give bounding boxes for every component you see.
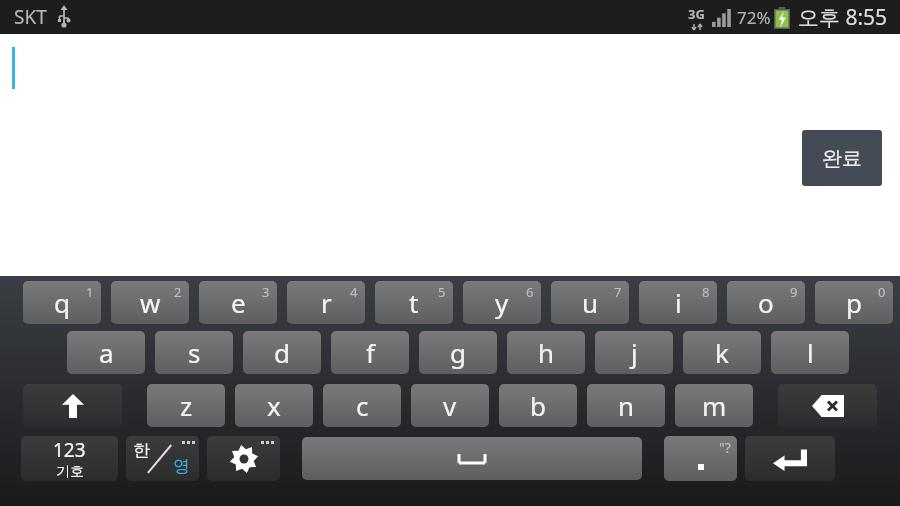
staticText: 72% bbox=[737, 6, 771, 29]
button[interactable]: Language bbox=[126, 436, 199, 481]
button[interactable]: g bbox=[419, 331, 497, 374]
staticText: 5 bbox=[438, 283, 446, 301]
staticText: 영 bbox=[173, 456, 190, 477]
staticText: n bbox=[618, 388, 635, 423]
staticText: k bbox=[715, 335, 729, 370]
staticText: i bbox=[675, 285, 682, 320]
staticText: y bbox=[495, 285, 509, 320]
staticText: h bbox=[538, 335, 555, 370]
staticText: 기호 bbox=[56, 463, 84, 481]
staticText: o bbox=[758, 285, 774, 320]
button[interactable]: p bbox=[815, 281, 893, 324]
button[interactable]: k bbox=[683, 331, 761, 374]
button[interactable]: r bbox=[287, 281, 365, 324]
staticText: c bbox=[356, 388, 369, 423]
button[interactable]: m bbox=[675, 384, 753, 427]
staticText: b bbox=[530, 388, 546, 423]
staticText: 8 bbox=[702, 283, 710, 301]
button[interactable]: j bbox=[595, 331, 673, 374]
staticText: r bbox=[321, 285, 332, 320]
button[interactable]: t bbox=[375, 281, 453, 324]
button[interactable]: c bbox=[323, 384, 401, 427]
staticText: 2 bbox=[174, 283, 182, 301]
button[interactable]: x bbox=[235, 384, 313, 427]
button[interactable]: Shift bbox=[23, 384, 122, 427]
button[interactable]: w bbox=[111, 281, 189, 324]
button[interactable]: o bbox=[727, 281, 805, 324]
staticText: 123 bbox=[53, 437, 86, 463]
staticText: "? bbox=[719, 438, 731, 457]
staticText: l bbox=[807, 335, 814, 370]
staticText: s bbox=[188, 335, 201, 370]
staticText: 완료 bbox=[822, 146, 862, 171]
button[interactable]: h bbox=[507, 331, 585, 374]
button[interactable]: i bbox=[639, 281, 717, 324]
button[interactable]: Numbers and symbols bbox=[21, 436, 118, 481]
staticText: u bbox=[582, 285, 599, 320]
staticText: SKT bbox=[14, 4, 47, 30]
staticText: a bbox=[99, 335, 114, 370]
button[interactable]: z bbox=[147, 384, 225, 427]
staticText: t bbox=[409, 285, 419, 320]
staticText: w bbox=[140, 285, 161, 320]
button[interactable]: 완료 bbox=[802, 130, 882, 186]
staticText: 6 bbox=[526, 283, 534, 301]
button[interactable]: a bbox=[67, 331, 145, 374]
button[interactable]: e bbox=[199, 281, 277, 324]
button[interactable]: n bbox=[587, 384, 665, 427]
staticText: j bbox=[631, 335, 638, 370]
staticText: x bbox=[267, 388, 281, 423]
staticText: e bbox=[231, 285, 246, 320]
button[interactable]: b bbox=[499, 384, 577, 427]
staticText: p bbox=[846, 285, 862, 320]
button[interactable]: Period bbox=[664, 436, 737, 481]
button[interactable]: Backspace bbox=[778, 384, 877, 427]
button[interactable]: v bbox=[411, 384, 489, 427]
staticText: 오후 8:55 bbox=[798, 3, 888, 32]
staticText: m bbox=[702, 388, 727, 423]
button[interactable]: y bbox=[463, 281, 541, 324]
button[interactable]: u bbox=[551, 281, 629, 324]
staticText: 3 bbox=[262, 283, 270, 301]
staticText: 4 bbox=[350, 283, 358, 301]
button[interactable]: Settings bbox=[207, 436, 280, 481]
staticText: d bbox=[274, 335, 290, 370]
staticText: 9 bbox=[790, 283, 798, 301]
button[interactable]: Space bbox=[302, 437, 642, 480]
button[interactable]: Enter bbox=[745, 436, 835, 481]
staticText: 0 bbox=[878, 283, 886, 301]
staticText: 한 bbox=[133, 440, 150, 461]
staticText: 1 bbox=[86, 283, 94, 301]
button[interactable]: s bbox=[155, 331, 233, 374]
staticText: z bbox=[180, 388, 193, 423]
button[interactable]: d bbox=[243, 331, 321, 374]
staticText: v bbox=[443, 388, 457, 423]
staticText: 3G bbox=[688, 5, 705, 23]
staticText: g bbox=[450, 335, 466, 370]
staticText: q bbox=[54, 285, 70, 320]
button[interactable]: q bbox=[23, 281, 101, 324]
staticText: 7 bbox=[614, 283, 622, 301]
button[interactable]: l bbox=[771, 331, 849, 374]
button[interactable]: f bbox=[331, 331, 409, 374]
staticText: f bbox=[366, 335, 375, 370]
